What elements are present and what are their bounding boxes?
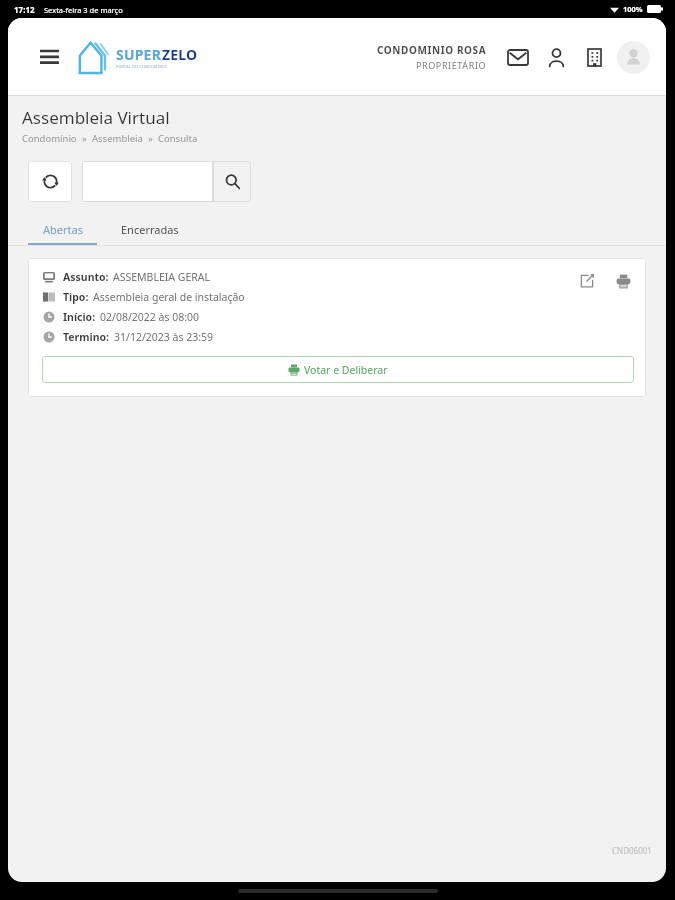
staticText: Consulta xyxy=(158,132,198,145)
staticText: CND06001 xyxy=(612,845,652,856)
button[interactable]: Menu xyxy=(34,42,64,72)
button[interactable]: Encerradas xyxy=(97,216,189,243)
staticText: Assunto: xyxy=(63,270,109,284)
staticText: Encerradas xyxy=(121,222,179,237)
button[interactable]: Condomínio xyxy=(579,42,609,72)
staticText: Assembleia Virtual xyxy=(22,106,170,129)
button[interactable]: Campo de busca xyxy=(82,161,213,202)
staticText: PROPRIETÁRIO xyxy=(416,59,487,71)
button[interactable]: Perfil xyxy=(541,42,571,72)
staticText: Votar e Deliberar xyxy=(304,363,388,377)
staticText: ASSEMBLEIA GERAL xyxy=(113,270,210,284)
staticText: Início: xyxy=(63,310,96,324)
staticText: CONDOMINIO ROSA xyxy=(377,43,487,57)
button[interactable]: Abertas xyxy=(28,216,97,245)
button[interactable]: Mensagens xyxy=(503,42,533,72)
staticText: » xyxy=(77,132,92,145)
staticText: 100% xyxy=(623,4,643,14)
button[interactable]: Votar e Deliberar xyxy=(42,356,634,383)
staticText: 02/08/2022 às 08:00 xyxy=(100,310,200,324)
staticText: » xyxy=(143,132,158,145)
staticText: Assembleia geral de instalação xyxy=(93,290,245,304)
staticText: Assembleia xyxy=(92,132,143,145)
staticText: 17:12 xyxy=(14,4,35,15)
staticText: Tipo: xyxy=(63,290,89,304)
staticText: Termino: xyxy=(63,330,110,344)
staticText: PORTAL DO CONDOMÍNIO xyxy=(116,64,167,69)
button[interactable]: Conta xyxy=(617,41,650,74)
button[interactable]: Atualizar xyxy=(28,161,72,202)
staticText: Sexta-feira 3 de março xyxy=(44,5,123,15)
button[interactable]: Imprimir xyxy=(612,270,634,292)
staticText: Condomínio xyxy=(22,132,77,145)
staticText: 31/12/2023 às 23:59 xyxy=(114,330,214,344)
button[interactable]: Editar xyxy=(576,270,598,292)
staticText: SUPER xyxy=(116,45,162,64)
staticText: Abertas xyxy=(43,222,83,237)
button[interactable]: Pesquisar xyxy=(213,161,251,202)
staticText: ZELO xyxy=(162,45,198,64)
